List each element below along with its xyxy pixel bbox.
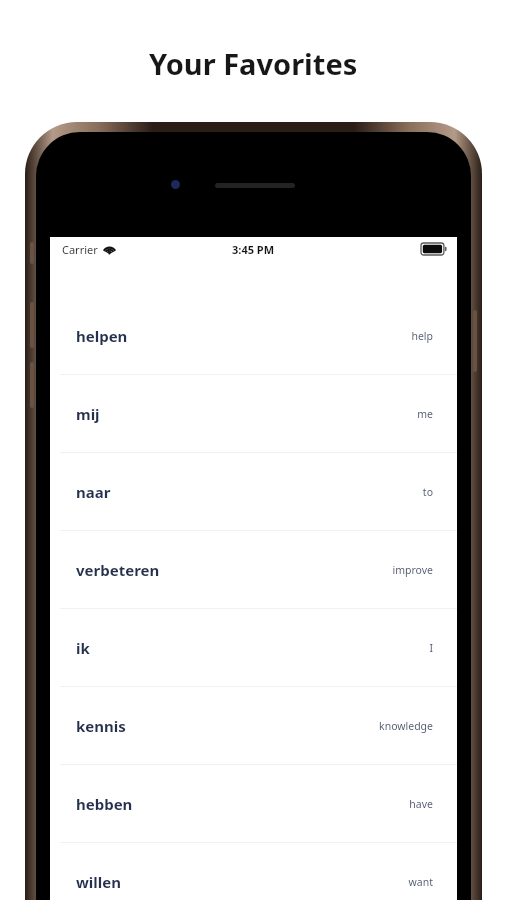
staticText: naar	[76, 482, 111, 502]
staticText: ik	[76, 638, 90, 658]
button[interactable]: helpen	[50, 297, 457, 374]
staticText: Carrier	[62, 242, 98, 257]
staticText: help	[411, 329, 433, 343]
staticText: 3:45 PM	[232, 242, 275, 257]
staticText: kennis	[76, 716, 126, 736]
staticText: to	[422, 485, 433, 499]
staticText: verbeteren	[76, 560, 160, 580]
button[interactable]: willen	[50, 843, 457, 900]
staticText: Your Favorites	[149, 44, 358, 83]
staticText: I	[429, 641, 433, 655]
staticText: willen	[76, 872, 121, 892]
button[interactable]: naar	[50, 453, 457, 530]
staticText: helpen	[76, 326, 128, 346]
staticText: knowledge	[379, 719, 433, 733]
staticText: want	[408, 875, 433, 889]
staticText: improve	[392, 563, 433, 577]
staticText: me	[417, 407, 433, 421]
staticText: have	[409, 797, 433, 811]
staticText: hebben	[76, 794, 133, 814]
button[interactable]: verbeteren	[50, 531, 457, 608]
button[interactable]: ik	[50, 609, 457, 686]
button[interactable]: kennis	[50, 687, 457, 764]
button[interactable]: mij	[50, 375, 457, 452]
button[interactable]: hebben	[50, 765, 457, 842]
staticText: mij	[76, 404, 100, 424]
